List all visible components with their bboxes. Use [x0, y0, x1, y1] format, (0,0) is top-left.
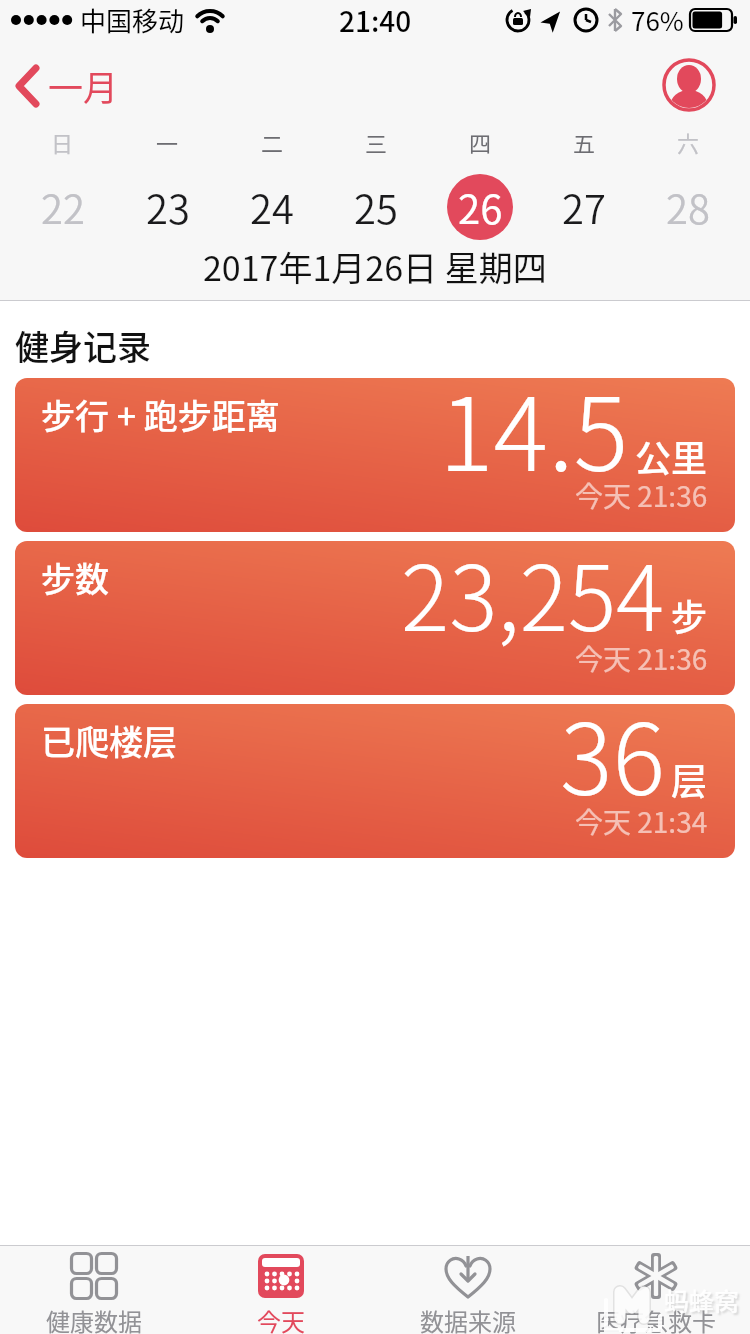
button[interactable]: 24 — [220, 172, 324, 242]
staticText: 步数 — [41, 553, 109, 602]
staticText: 健身记录 — [15, 321, 151, 370]
staticText: 公里 — [635, 430, 708, 482]
staticText: 22 — [41, 178, 85, 236]
staticText: 中国移动 — [80, 1, 185, 39]
staticText: 一月 — [48, 60, 119, 111]
staticText: 21:40 — [339, 0, 412, 40]
staticText: 步 — [671, 589, 708, 641]
staticText: 三 — [365, 126, 388, 158]
staticText: 36 — [560, 704, 665, 823]
staticText: 14.5 — [439, 378, 629, 501]
button[interactable]: 23 — [115, 172, 220, 242]
button[interactable]: 已爬楼层 — [15, 704, 735, 858]
button[interactable]: 数据来源 — [374, 1246, 562, 1334]
staticText: 四 — [469, 126, 492, 158]
staticText: 26 — [458, 178, 503, 236]
staticText: 步行 + 跑步距离 — [41, 390, 280, 439]
staticText: 23 — [146, 178, 190, 236]
button[interactable]: 一月 — [14, 60, 119, 111]
staticText: 25 — [354, 178, 398, 236]
staticText: 24 — [250, 178, 294, 236]
staticText: 数据来源 — [420, 1303, 516, 1334]
staticText: 23,254 — [401, 541, 665, 657]
staticText: 76% — [631, 1, 684, 39]
staticText: 今天 21:36 — [575, 638, 708, 679]
button[interactable]: 步行 + 跑步距离 — [15, 378, 735, 532]
staticText: 28 — [666, 178, 710, 236]
staticText: 六 — [677, 126, 700, 158]
button[interactable]: 27 — [532, 172, 636, 242]
staticText: 已爬楼层 — [41, 716, 177, 765]
button[interactable]: 今天 — [187, 1246, 374, 1334]
button[interactable] — [661, 57, 717, 113]
button[interactable]: 25 — [324, 172, 428, 242]
staticText: 一 — [156, 126, 179, 158]
staticText: 今天 21:36 — [575, 475, 708, 516]
staticText: 今天 — [257, 1303, 305, 1334]
button[interactable]: 26 — [428, 172, 532, 242]
staticText: 2017年1月26日 星期四 — [203, 242, 547, 291]
button[interactable]: 22 — [10, 172, 115, 242]
staticText: 日 — [51, 126, 74, 158]
staticText: 健康数据 — [46, 1303, 142, 1334]
button[interactable]: 健康数据 — [0, 1246, 187, 1334]
staticText: 今天 21:34 — [575, 801, 708, 842]
staticText: 层 — [671, 753, 708, 805]
button[interactable]: 28 — [636, 172, 740, 242]
staticText: 蚂蜂窝 — [664, 1282, 740, 1318]
staticText: 医疗急救卡 — [596, 1303, 716, 1334]
button[interactable]: 步数 — [15, 541, 735, 695]
staticText: 二 — [261, 126, 284, 158]
staticText: 27 — [562, 178, 606, 236]
staticText: 五 — [573, 126, 596, 158]
button[interactable]: 医疗急救卡 — [562, 1246, 750, 1334]
